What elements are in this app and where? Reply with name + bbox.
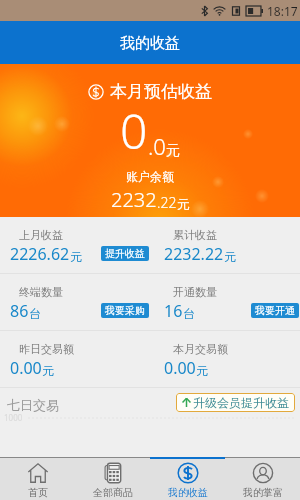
button[interactable]: 全部商品: [75, 457, 150, 500]
staticText: 台: [29, 306, 41, 321]
staticText: 元: [166, 142, 180, 160]
button[interactable]: 我的收益: [150, 457, 225, 500]
staticText: 我的收益: [168, 486, 208, 499]
staticText: 首页: [28, 486, 48, 499]
staticText: 我要采购: [105, 304, 145, 317]
staticText: 2226.62: [10, 243, 70, 265]
staticText: 0: [120, 98, 148, 163]
staticText: 本月预估收益: [110, 81, 212, 102]
button[interactable]: 提升收益: [101, 246, 149, 261]
staticText: 18:17: [267, 3, 298, 19]
button[interactable]: 我要采购: [101, 303, 149, 318]
staticText: 七日交易: [7, 397, 59, 413]
staticText: 台: [183, 306, 195, 321]
button[interactable]: 首页: [0, 457, 75, 500]
staticText: 元: [42, 363, 54, 378]
button[interactable]: 我要开通: [251, 303, 299, 318]
staticText: 元: [177, 196, 190, 212]
staticText: 我要开通: [255, 304, 295, 317]
staticText: 本月交易额: [173, 342, 228, 356]
staticText: 上月收益: [19, 228, 63, 242]
button[interactable]: 我的掌富: [225, 457, 300, 500]
staticText: 元: [224, 249, 236, 264]
staticText: 86: [10, 300, 29, 322]
staticText: 2232.22: [164, 243, 224, 265]
staticText: 2232: [111, 186, 157, 213]
staticText: 开通数量: [173, 285, 217, 299]
staticText: 全部商品: [93, 486, 133, 499]
staticText: .0: [148, 131, 166, 161]
staticText: 元: [196, 363, 208, 378]
staticText: 16: [164, 300, 183, 322]
staticText: 昨日交易额: [19, 342, 74, 356]
staticText: 0.00: [164, 357, 196, 379]
staticText: 我的掌富: [243, 486, 283, 499]
staticText: 0.00: [10, 357, 42, 379]
staticText: 提升收益: [105, 247, 145, 260]
staticText: 元: [70, 249, 82, 264]
staticText: 1000: [4, 412, 23, 423]
button[interactable]: 升级会员提升收益: [176, 393, 295, 412]
staticText: 我的收益: [120, 34, 180, 53]
staticText: 累计收益: [173, 228, 217, 242]
staticText: .22: [157, 193, 177, 212]
staticText: 终端数量: [19, 285, 63, 299]
staticText: 账户余额: [126, 169, 174, 184]
staticText: 升级会员提升收益: [193, 395, 289, 410]
